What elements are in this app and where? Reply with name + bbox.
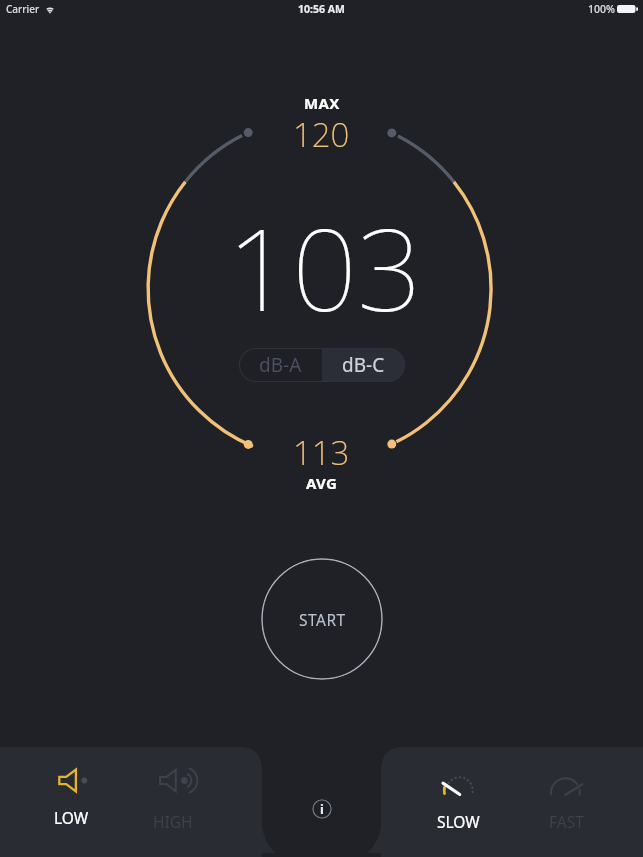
button[interactable]: START bbox=[261, 558, 383, 680]
staticText: i bbox=[320, 800, 324, 818]
staticText: dB-A bbox=[259, 352, 302, 378]
staticText: FAST bbox=[549, 811, 584, 832]
staticText: 113 bbox=[293, 430, 350, 475]
staticText: MAX bbox=[304, 93, 340, 113]
button[interactable]: dB-A bbox=[239, 348, 322, 382]
staticText: 120 bbox=[293, 112, 350, 157]
staticText: 100% bbox=[588, 2, 615, 16]
staticText: AVG bbox=[306, 473, 338, 493]
button[interactable]: HIGH bbox=[122, 747, 223, 857]
staticText: START bbox=[299, 609, 346, 630]
staticText: 103 bbox=[227, 189, 422, 344]
button[interactable]: LOW bbox=[21, 747, 122, 857]
staticText: SLOW bbox=[437, 811, 480, 832]
button[interactable]: SLOW bbox=[404, 747, 512, 857]
button[interactable]: Info bbox=[312, 799, 332, 819]
staticText: dB-C bbox=[342, 352, 385, 378]
staticText: HIGH bbox=[153, 811, 193, 832]
staticText: LOW bbox=[54, 807, 89, 828]
button[interactable]: dB-C bbox=[322, 348, 405, 382]
staticText: Carrier bbox=[6, 2, 40, 16]
staticText: 10:56 AM bbox=[298, 2, 345, 16]
button[interactable]: FAST bbox=[512, 747, 620, 857]
